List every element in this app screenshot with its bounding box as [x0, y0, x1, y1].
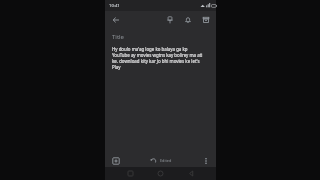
- button[interactable]: Archive: [199, 13, 212, 26]
- button[interactable]: Pin note: [163, 13, 176, 26]
- button[interactable]: Back: [109, 13, 122, 26]
- button[interactable]: Home: [155, 168, 166, 179]
- button[interactable]: Add content: [109, 154, 122, 167]
- staticText: 10:41: [109, 3, 120, 9]
- button[interactable]: Reminder: [181, 13, 194, 26]
- button[interactable]: Back: [186, 168, 197, 179]
- staticText: Edited: [160, 158, 172, 163]
- staticText: Play: [112, 64, 121, 70]
- staticText: Title: [112, 33, 124, 41]
- button[interactable]: Recents: [125, 168, 136, 179]
- button[interactable]: Title: [105, 28, 216, 153]
- staticText: YouTube ay movies wgtns kay bolirey ma a…: [112, 52, 203, 58]
- staticText: ke. download kity kar Jo bhi movies ke l…: [112, 58, 200, 64]
- button[interactable]: More options: [199, 154, 212, 167]
- button[interactable]: Undo: [148, 155, 158, 165]
- staticText: Hy doulo ma'ag loge ko balaya ga kp: [112, 46, 188, 52]
